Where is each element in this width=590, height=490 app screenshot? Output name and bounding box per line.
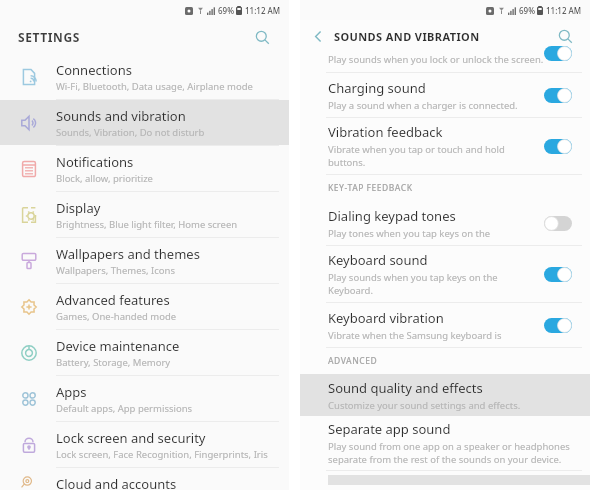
- staticText: Play sounds when you tap keys on the Sam…: [328, 271, 518, 284]
- staticText: Wi-Fi, Bluetooth, Data usage, Airplane m…: [56, 80, 253, 93]
- button[interactable]: Search: [249, 24, 275, 50]
- staticText: KEY-TAP FEEDBACK: [328, 182, 413, 194]
- button[interactable]: Display: [0, 192, 289, 237]
- button[interactable]: Sound quality and effects: [300, 374, 590, 416]
- staticText: 69%: [218, 5, 234, 16]
- staticText: Sounds, Vibration, Do not disturb: [56, 126, 205, 139]
- button[interactable]: Toggle off: [544, 216, 572, 231]
- button[interactable]: Toggle on: [544, 88, 572, 103]
- button[interactable]: Sounds and vibration: [0, 100, 289, 145]
- button[interactable]: Toggle on: [544, 139, 572, 154]
- staticText: separate from the rest of the sounds on …: [328, 453, 562, 466]
- staticText: Play sound from one app on a speaker or …: [328, 440, 570, 453]
- staticText: Keyboard vibration: [328, 309, 444, 327]
- staticText: Dialing keypad tones: [328, 207, 456, 225]
- staticText: Vibrate when you tap or touch and hold c…: [328, 143, 518, 156]
- button[interactable]: Notifications: [0, 146, 289, 191]
- staticText: Keyboard.: [328, 284, 373, 297]
- staticText: Connections: [56, 61, 132, 79]
- staticText: Lock screen and security: [56, 429, 206, 447]
- staticText: Play tones when you tap keys on the dial…: [328, 227, 518, 240]
- staticText: Brightness, Blue light filter, Home scre…: [56, 218, 238, 231]
- staticText: 69%: [519, 5, 535, 16]
- button[interactable]: Keyboard vibration: [300, 303, 590, 347]
- button[interactable]: Vibration feedback: [300, 118, 590, 174]
- button[interactable]: Separate app sound: [300, 416, 590, 470]
- button[interactable]: Connections: [0, 54, 289, 99]
- button[interactable]: Wallpapers and themes: [0, 238, 289, 283]
- staticText: Vibrate when the Samsung keyboard is tap…: [328, 329, 518, 342]
- staticText: Lock screen, Face Recognition, Fingerpri…: [56, 448, 268, 461]
- staticText: Wallpapers and themes: [56, 245, 200, 263]
- button[interactable]: Back: [306, 24, 330, 48]
- staticText: Default apps, App permissions: [56, 402, 193, 415]
- button[interactable]: Toggle on: [544, 46, 572, 61]
- staticText: Play sounds when you lock or unlock the …: [328, 53, 544, 66]
- staticText: Advanced features: [56, 291, 170, 309]
- button[interactable]: Toggle on: [544, 267, 572, 282]
- button[interactable]: Search: [552, 23, 578, 49]
- button[interactable]: Cloud and accounts: [0, 468, 289, 490]
- button[interactable]: Toggle on: [544, 318, 572, 333]
- staticText: Block, allow, prioritize: [56, 172, 153, 185]
- staticText: Games, One-handed mode: [56, 310, 177, 323]
- staticText: Keyboard sound: [328, 251, 428, 269]
- button[interactable]: Keyboard sound: [300, 246, 590, 302]
- button[interactable]: Apps: [0, 376, 289, 421]
- staticText: buttons.: [328, 156, 366, 169]
- staticText: Vibration feedback: [328, 123, 443, 141]
- button[interactable]: Charging sound: [300, 73, 590, 117]
- staticText: Battery, Storage, Memory: [56, 356, 171, 369]
- staticText: ADVANCED: [328, 355, 378, 367]
- staticText: 11:12 AM: [245, 5, 281, 16]
- staticText: Separate app sound: [328, 420, 451, 438]
- staticText: Play a sound when a charger is connected…: [328, 99, 518, 112]
- button[interactable]: Lock screen and security: [0, 422, 289, 467]
- staticText: Wallpapers, Themes, Icons: [56, 264, 176, 277]
- staticText: Customize your sound settings and effect…: [328, 399, 521, 412]
- button[interactable]: Dialing keypad tones: [300, 201, 590, 245]
- staticText: Apps: [56, 383, 87, 401]
- staticText: Charging sound: [328, 79, 426, 97]
- staticText: Display: [56, 199, 101, 217]
- staticText: Cloud and accounts: [56, 475, 177, 490]
- staticText: Sounds and vibration: [56, 107, 186, 125]
- staticText: 11:12 AM: [546, 5, 582, 16]
- staticText: Sound quality and effects: [328, 379, 483, 397]
- staticText: SETTINGS: [18, 29, 80, 45]
- staticText: SOUNDS AND VIBRATION: [334, 29, 480, 44]
- staticText: Device maintenance: [56, 337, 180, 355]
- button[interactable]: Device maintenance: [0, 330, 289, 375]
- staticText: Notifications: [56, 153, 134, 171]
- button[interactable]: Advanced features: [0, 284, 289, 329]
